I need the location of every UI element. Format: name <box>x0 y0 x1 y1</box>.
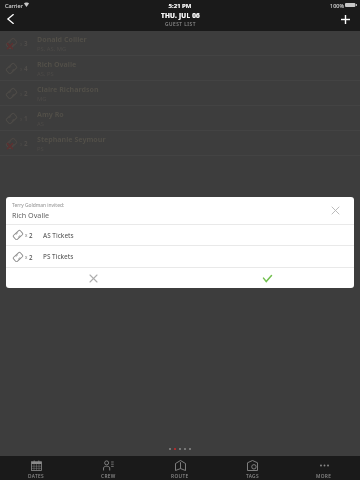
staticText: 4 <box>24 64 28 73</box>
button[interactable]: MORE <box>288 456 360 480</box>
button[interactable]: Add <box>336 10 354 28</box>
staticText: AS, PS <box>37 70 54 78</box>
button[interactable]: DATES <box>0 456 72 480</box>
button[interactable]: Accept <box>180 268 354 288</box>
staticText: Amy Ro <box>37 109 64 119</box>
button[interactable]: TAGS <box>216 456 288 480</box>
staticText: PS <box>37 145 44 153</box>
staticText: MG <box>37 95 47 103</box>
staticText: GUEST LIST <box>165 21 196 28</box>
staticText: 2 <box>29 231 33 239</box>
button[interactable]: x <box>6 246 354 267</box>
staticText: 1 <box>24 114 28 123</box>
staticText: PS, AS, MG <box>37 45 67 53</box>
staticText: Stephanie Seymour <box>37 134 106 144</box>
button[interactable]: Close <box>327 202 343 218</box>
staticText: 3 <box>24 39 28 48</box>
staticText: DATES <box>28 473 44 480</box>
staticText: TAGS <box>246 473 259 480</box>
staticText: 2 <box>24 139 28 148</box>
staticText: PS Tickets <box>43 252 74 261</box>
staticText: x <box>25 254 28 260</box>
staticText: Claire Richardson <box>37 84 99 94</box>
staticText: AS <box>37 120 44 128</box>
staticText: Donald Collier <box>37 34 87 44</box>
staticText: Rich Ovalle <box>37 59 77 69</box>
staticText: Carrier <box>5 2 23 9</box>
button[interactable]: CREW <box>72 456 144 480</box>
staticText: 2 <box>29 253 33 261</box>
button[interactable]: x <box>6 225 354 245</box>
staticText: THU. JUL 06 <box>161 11 200 20</box>
staticText: Terry Goldman invited: <box>12 202 65 209</box>
button[interactable]: Back <box>1 10 20 28</box>
button[interactable]: Decline <box>6 268 180 288</box>
staticText: x <box>25 232 28 238</box>
staticText: AS Tickets <box>43 231 74 240</box>
staticText: Rich Ovalle <box>12 210 50 220</box>
staticText: ROUTE <box>171 473 189 480</box>
staticText: MORE <box>316 473 332 480</box>
staticText: 2 <box>24 89 28 98</box>
staticText: 5:21 PM <box>0 2 360 10</box>
staticText: 100% <box>330 2 345 9</box>
button[interactable]: ROUTE <box>144 456 216 480</box>
staticText: CREW <box>101 473 116 480</box>
